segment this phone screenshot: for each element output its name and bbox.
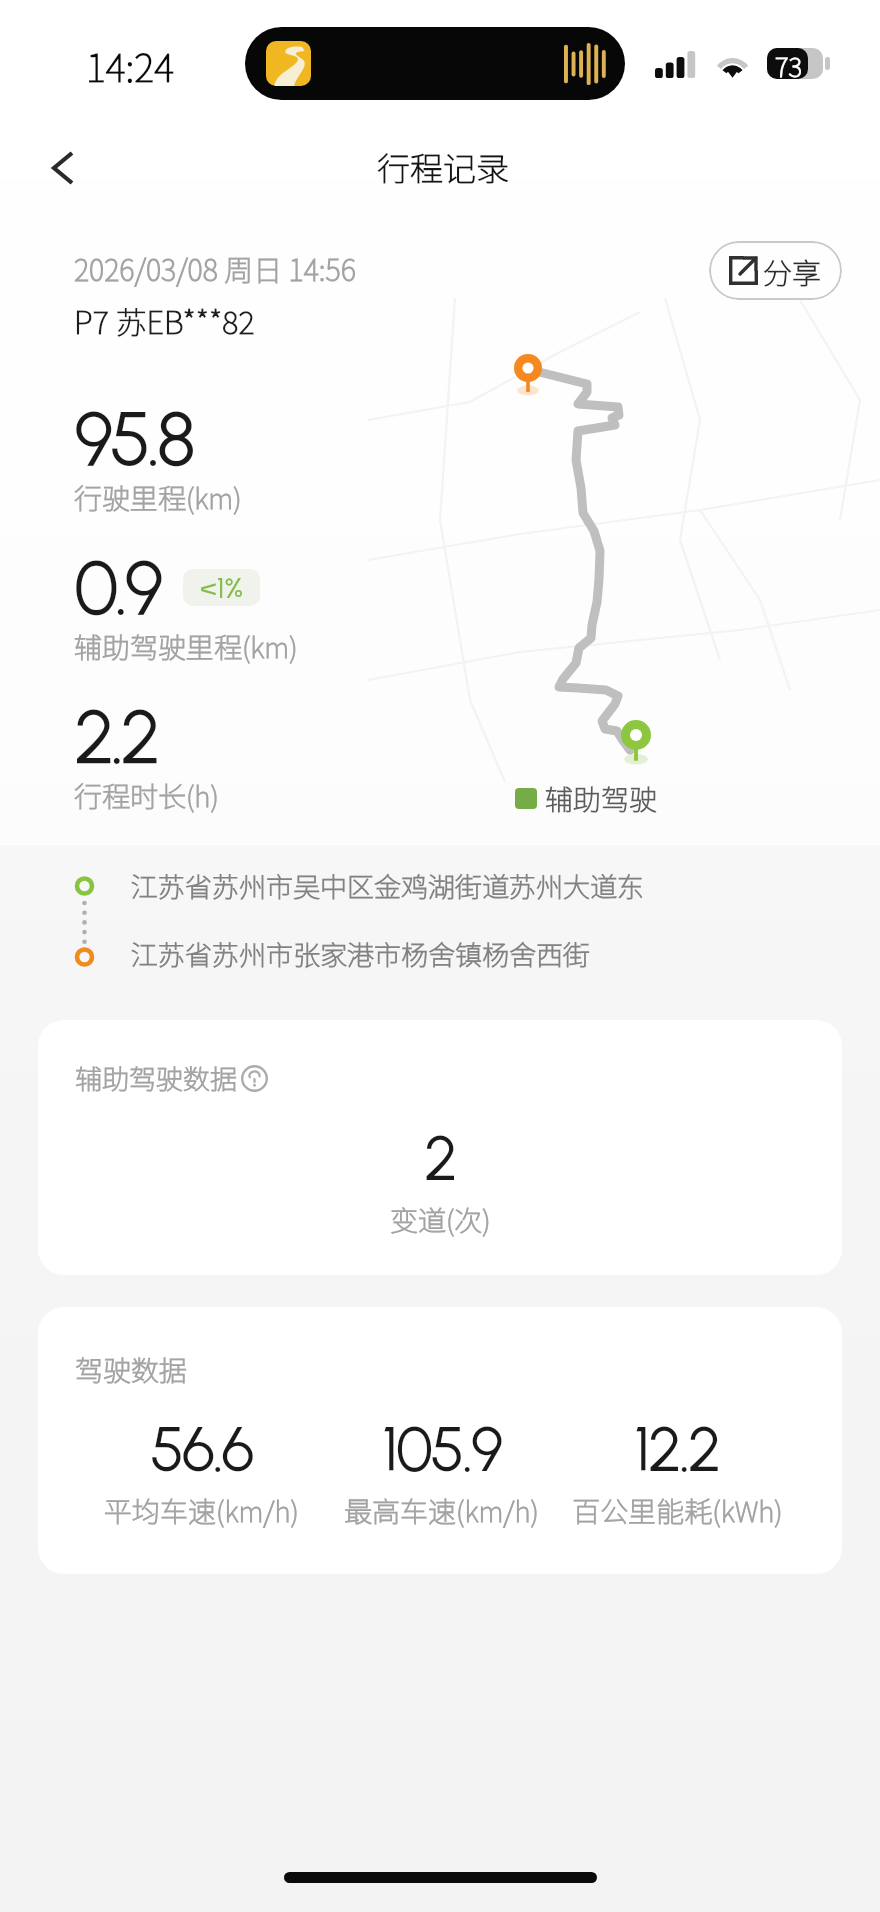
- staticText: 变道(次): [390, 1199, 491, 1240]
- button[interactable]: 辅助驾驶数据: [38, 1020, 842, 1275]
- button[interactable]: Back: [25, 130, 101, 206]
- button[interactable]: 驾驶数据: [38, 1307, 842, 1574]
- staticText: 73: [775, 47, 803, 78]
- staticText: 行程记录: [377, 143, 509, 191]
- staticText: <1%: [200, 570, 244, 605]
- staticText: 2.2: [74, 692, 158, 782]
- button[interactable]: 分享: [709, 241, 842, 300]
- staticText: 行程时长(h): [74, 775, 219, 816]
- staticText: 分享: [763, 250, 822, 292]
- staticText: 56.6: [150, 1412, 253, 1486]
- staticText: 百公里能耗(kWh): [572, 1490, 783, 1531]
- staticText: 江苏省苏州市张家港市杨舍镇杨舍西街: [131, 934, 590, 973]
- staticText: 驾驶数据: [75, 1349, 188, 1390]
- staticText: 14:24: [86, 38, 174, 93]
- staticText: 2026/03/08 周日 14:56: [74, 247, 356, 289]
- staticText: 辅助驾驶: [545, 778, 658, 819]
- staticText: 辅助驾驶数据: [75, 1058, 237, 1097]
- staticText: 行驶里程(km): [74, 477, 242, 518]
- staticText: 最高车速(km/h): [344, 1490, 539, 1531]
- staticText: 江苏省苏州市吴中区金鸡湖街道苏州大道东: [131, 866, 644, 905]
- staticText: 12.2: [634, 1412, 720, 1486]
- staticText: 0.9: [74, 543, 160, 633]
- staticText: 105.9: [382, 1412, 501, 1486]
- staticText: 平均车速(km/h): [104, 1490, 299, 1531]
- staticText: 2: [424, 1121, 458, 1195]
- staticText: 辅助驾驶里程(km): [74, 626, 298, 667]
- staticText: P7 苏EB***82: [74, 298, 255, 343]
- staticText: 95.8: [74, 394, 192, 484]
